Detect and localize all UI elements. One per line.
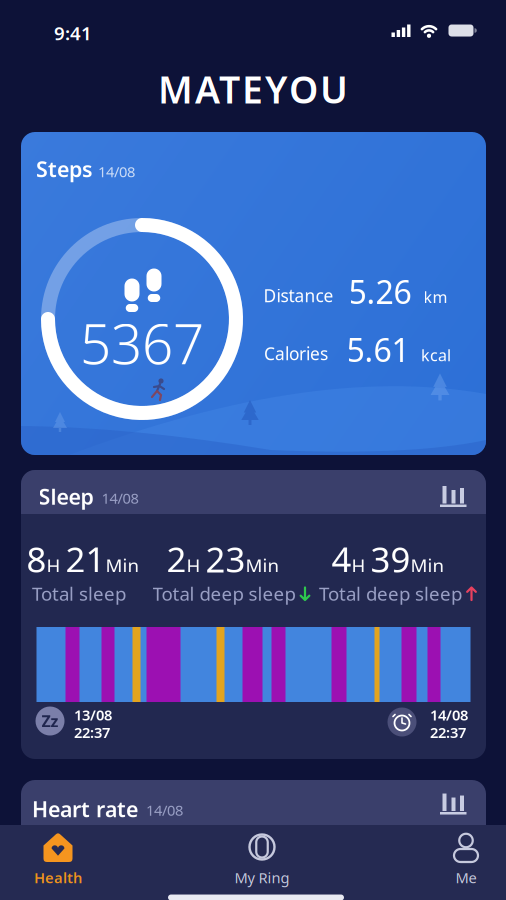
staticText: H (46, 553, 65, 578)
staticText: 21 (65, 536, 105, 582)
staticText: km (423, 286, 447, 308)
staticText: 39 (370, 536, 410, 582)
staticText: 9:41 (54, 21, 92, 45)
staticText: Min (105, 553, 139, 578)
staticText: 13/08 (74, 705, 112, 724)
button[interactable]: Health (8, 825, 108, 895)
staticText: Total deep sleep (152, 581, 295, 606)
staticText: H (186, 553, 205, 578)
staticText: 14/08 (146, 800, 183, 820)
staticText: Min (245, 553, 279, 578)
staticText: My Ring (234, 868, 289, 887)
staticText: Steps (36, 155, 93, 183)
staticText: Min (410, 553, 444, 578)
button[interactable]: Heart rate history (440, 790, 468, 814)
staticText: H (351, 553, 370, 578)
staticText: MATEYOU (158, 64, 348, 114)
staticText: 4 (331, 536, 351, 582)
staticText: 14/08 (430, 705, 468, 724)
staticText: Me (455, 868, 476, 887)
staticText: 8 (26, 536, 46, 582)
staticText: Total sleep (32, 581, 126, 606)
button[interactable]: Steps (21, 132, 486, 455)
staticText: 2 (166, 536, 186, 582)
staticText: 22:37 (74, 722, 110, 742)
button[interactable]: Sleep history (440, 483, 468, 507)
button[interactable]: Me (416, 825, 506, 895)
staticText: Sleep (38, 482, 93, 511)
staticText: Total deep sleep (319, 581, 462, 606)
staticText: Heart rate (32, 795, 138, 823)
staticText: 5367 (80, 307, 204, 379)
staticText: 5.61 (346, 328, 409, 371)
staticText: Health (34, 868, 82, 887)
staticText: Calories (264, 342, 328, 365)
staticText: Zz (41, 710, 58, 732)
button[interactable]: Sleep (21, 470, 486, 759)
button[interactable]: Heart rate (21, 780, 486, 840)
staticText: 14/08 (101, 488, 138, 508)
staticText: Distance (263, 284, 333, 307)
staticText: 5.26 (348, 270, 411, 313)
staticText: kcal (421, 344, 451, 366)
button[interactable]: My Ring (212, 825, 312, 895)
staticText: 23 (205, 536, 245, 582)
staticText: 14/08 (98, 162, 135, 181)
staticText: 22:37 (430, 722, 466, 742)
